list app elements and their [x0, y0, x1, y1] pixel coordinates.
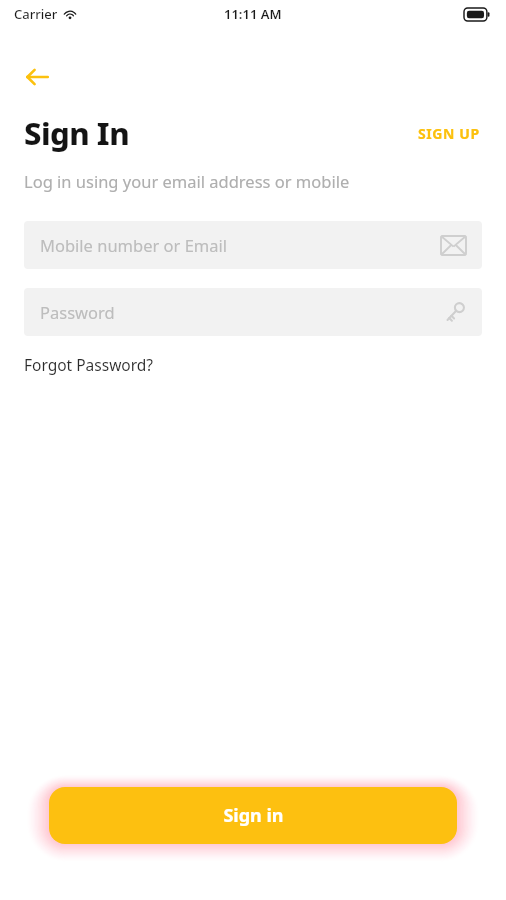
other: Password — [444, 301, 466, 323]
button[interactable]: SIGN UP — [416, 118, 482, 149]
staticText: 11:11 AM — [224, 5, 282, 23]
staticText: Forgot Password? — [24, 354, 154, 375]
staticText: Mobile number or Email — [40, 234, 228, 256]
button[interactable]: Password — [24, 288, 482, 336]
staticText: Sign In — [24, 112, 130, 154]
staticText: Log in using your email address or mobil… — [24, 170, 350, 192]
button[interactable]: Sign in — [49, 787, 457, 844]
staticText: Password — [40, 301, 115, 323]
staticText: Sign in — [223, 803, 284, 828]
button[interactable]: Forgot Password? — [24, 350, 154, 379]
button[interactable]: Back — [14, 54, 60, 100]
staticText: Carrier — [14, 5, 58, 23]
button[interactable]: Mobile number or Email — [24, 221, 482, 269]
staticText: SIGN UP — [418, 124, 480, 143]
other: Email — [441, 236, 466, 255]
